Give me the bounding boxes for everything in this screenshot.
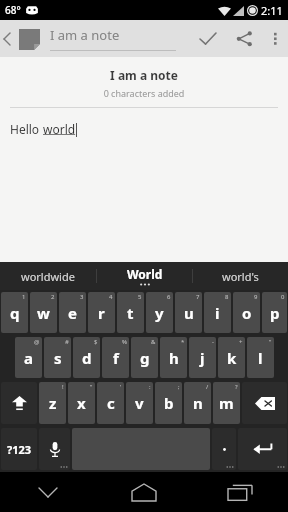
- staticText: 1: [22, 293, 26, 301]
- staticText: ": [269, 338, 272, 346]
- staticText: b: [164, 393, 174, 413]
- staticText: l: [258, 348, 263, 368]
- staticText: 0 characters added: [0, 87, 288, 99]
- button[interactable]: Save: [190, 20, 226, 57]
- staticText: x: [77, 393, 86, 413]
- staticText: ": [90, 383, 93, 391]
- staticText: n: [193, 393, 203, 413]
- staticText: y: [155, 303, 164, 323]
- staticText: 2:11: [261, 3, 283, 18]
- button[interactable]: t: [117, 292, 144, 333]
- staticText: +: [239, 338, 243, 346]
- staticText: i: [215, 303, 220, 323]
- staticText: world's: [222, 269, 259, 284]
- button[interactable]: y: [146, 292, 173, 333]
- button[interactable]: p: [262, 292, 287, 333]
- staticText: I am a note: [50, 26, 120, 44]
- staticText: I am a note: [0, 67, 288, 83]
- staticText: 9: [254, 293, 258, 301]
- button[interactable]: key: [242, 382, 287, 424]
- button[interactable]: Note color: [14, 24, 44, 54]
- button[interactable]: s: [44, 337, 71, 378]
- staticText: /: [206, 383, 209, 391]
- button[interactable]: Home: [96, 472, 192, 512]
- button[interactable]: key: [238, 428, 287, 470]
- staticText: p: [270, 303, 280, 323]
- button[interactable]: b: [155, 382, 182, 424]
- button[interactable]: h: [160, 337, 187, 378]
- button[interactable]: w: [30, 292, 57, 333]
- button[interactable]: key: [1, 382, 37, 424]
- button[interactable]: i: [204, 292, 231, 333]
- staticText: e: [68, 303, 77, 323]
- staticText: q: [10, 303, 20, 323]
- staticText: c: [107, 393, 115, 413]
- staticText: #: [65, 338, 69, 346]
- button[interactable]: f: [102, 337, 129, 378]
- button[interactable]: c: [97, 382, 124, 424]
- staticText: g: [140, 348, 150, 368]
- button[interactable]: d: [73, 337, 100, 378]
- button[interactable]: Share: [226, 20, 262, 57]
- button[interactable]: world's: [193, 262, 288, 290]
- button[interactable]: World: [97, 262, 192, 290]
- button[interactable]: q: [1, 292, 28, 333]
- button[interactable]: j: [189, 337, 216, 378]
- button[interactable]: Back: [0, 20, 14, 57]
- staticText: -: [212, 338, 214, 346]
- staticText: r: [98, 303, 105, 323]
- button[interactable]: Hide keyboard: [0, 472, 96, 512]
- button[interactable]: u: [175, 292, 202, 333]
- staticText: d: [82, 348, 92, 368]
- staticText: ?123: [7, 442, 32, 457]
- button[interactable]: o: [233, 292, 260, 333]
- button[interactable]: ?123: [1, 428, 37, 470]
- staticText: @: [34, 338, 40, 346]
- button[interactable]: x: [68, 382, 95, 424]
- staticText: a: [24, 348, 33, 368]
- button[interactable]: n: [184, 382, 211, 424]
- staticText: 6: [167, 293, 171, 301]
- staticText: f: [113, 348, 119, 368]
- staticText: v: [135, 393, 144, 413]
- staticText: %: [122, 338, 127, 346]
- button[interactable]: r: [88, 292, 115, 333]
- staticText: ': [120, 383, 122, 391]
- staticText: j: [200, 348, 205, 368]
- staticText: 4: [109, 293, 113, 301]
- staticText: 7: [196, 293, 200, 301]
- staticText: Hello: [10, 121, 43, 137]
- staticText: 68°: [5, 3, 21, 17]
- staticText: o: [242, 303, 252, 323]
- staticText: h: [169, 348, 179, 368]
- staticText: 5: [138, 293, 142, 301]
- staticText: &: [151, 338, 156, 346]
- button[interactable]: z: [39, 382, 66, 424]
- button[interactable]: g: [131, 337, 158, 378]
- staticText: w: [37, 303, 50, 323]
- staticText: worldwide: [21, 269, 75, 284]
- button[interactable]: l: [247, 337, 274, 378]
- button[interactable]: a: [15, 337, 42, 378]
- staticText: 2: [51, 293, 55, 301]
- button[interactable]: k: [218, 337, 245, 378]
- button[interactable]: e: [59, 292, 86, 333]
- staticText: s: [54, 348, 62, 368]
- staticText: z: [49, 393, 57, 413]
- button[interactable]: key: [212, 428, 236, 470]
- button[interactable]: v: [126, 382, 153, 424]
- button[interactable]: Recent apps: [192, 472, 288, 512]
- staticText: ;: [178, 383, 180, 391]
- staticText: 8: [225, 293, 229, 301]
- staticText: 0: [281, 293, 285, 301]
- staticText: t: [127, 303, 134, 323]
- button[interactable]: worldwide: [0, 262, 96, 290]
- staticText: World: [127, 266, 163, 282]
- button[interactable]: key: [39, 428, 70, 470]
- staticText: m: [219, 393, 234, 413]
- staticText: ?: [235, 383, 238, 391]
- button[interactable]: m: [213, 382, 240, 424]
- button[interactable]: More options: [262, 20, 288, 57]
- staticText: $: [94, 338, 98, 346]
